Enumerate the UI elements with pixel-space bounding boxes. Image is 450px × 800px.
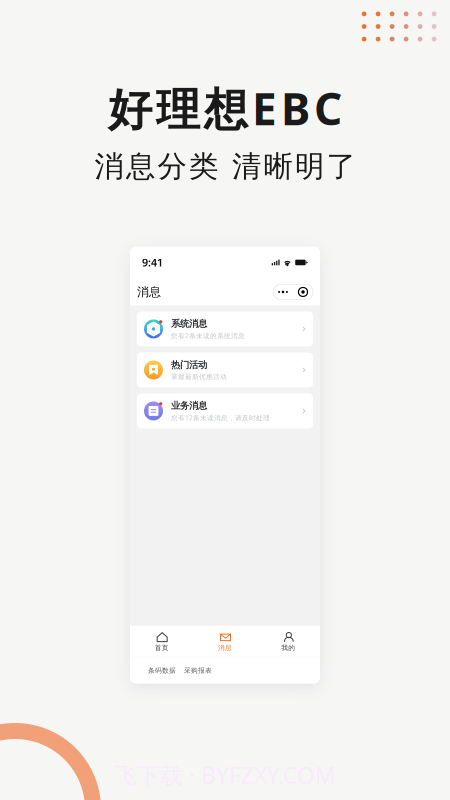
button[interactable]: 我的 <box>257 626 320 657</box>
staticText: 采购报表 <box>184 666 212 675</box>
button[interactable]: 首页 <box>130 626 193 657</box>
staticText: 我的 <box>281 644 295 652</box>
staticText: 首页 <box>155 644 169 652</box>
staticText: 热门活动 <box>171 359 207 371</box>
button[interactable]: 系统消息 <box>137 311 313 346</box>
staticText: 9:41 <box>142 255 163 270</box>
staticText: 飞下载 · BYFZXY.COM <box>114 760 336 790</box>
button[interactable]: 条码数据 <box>148 666 176 675</box>
staticText: 消息分类 清晰明了 <box>94 148 355 184</box>
button[interactable]: More <box>273 284 313 299</box>
staticText: 掌握最新优惠活动 <box>171 373 227 381</box>
staticText: 好理想EBC <box>108 79 342 137</box>
button[interactable]: 业务消息 <box>137 393 313 428</box>
button[interactable]: 消息 <box>193 626 257 657</box>
staticText: 业务消息 <box>171 400 207 411</box>
staticText: 您有2条未读的系统消息 <box>171 331 245 340</box>
button[interactable]: 热门活动 <box>137 352 313 387</box>
staticText: 条码数据 <box>148 666 176 675</box>
button[interactable]: 采购报表 <box>184 666 212 675</box>
staticText: 系统消息 <box>171 318 207 329</box>
staticText: 消息 <box>137 285 161 299</box>
staticText: 您有12条未读消息，请及时处理 <box>171 413 270 422</box>
staticText: 消息 <box>218 644 232 652</box>
